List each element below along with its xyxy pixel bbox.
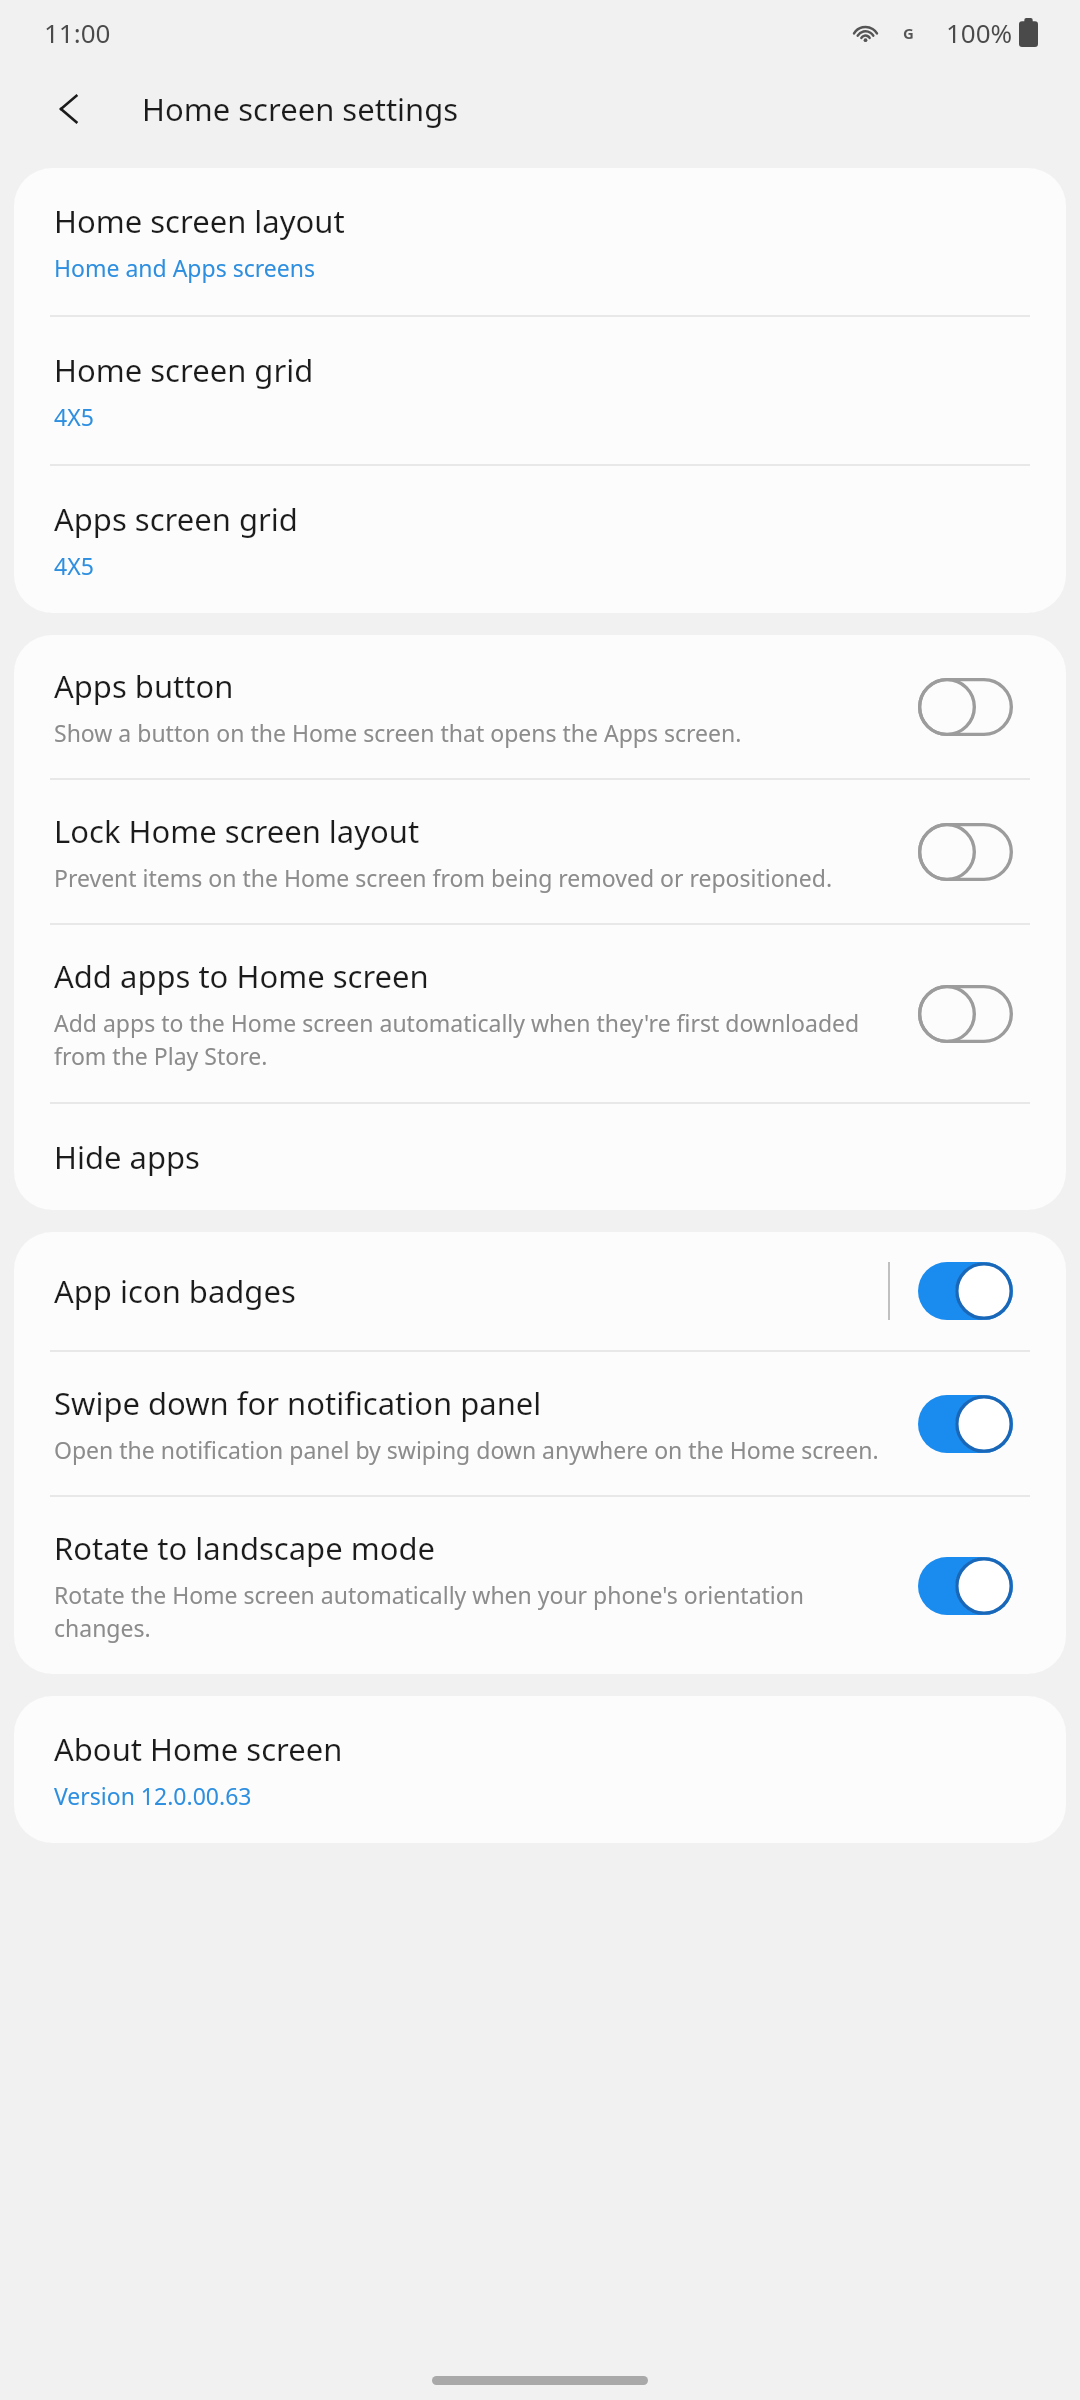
button[interactable]: Home screen layout [14,168,1066,315]
button[interactable]: App icon badges [918,1262,1013,1320]
button[interactable]: Rotate to landscape mode [14,1497,1066,1674]
button[interactable]: About Home screen [14,1696,1066,1843]
staticText: Hide apps [54,1136,200,1178]
button[interactable]: Swipe down for notification panel [918,1395,1013,1453]
staticText: Show a button on the Home screen that op… [54,717,742,748]
staticText: G [903,23,914,43]
button[interactable]: App icon badges [14,1232,1066,1350]
staticText: Apps screen grid [54,498,298,540]
button[interactable]: Swipe down for notification panel [14,1352,1066,1495]
staticText: Rotate the Home screen automatically whe… [54,1579,898,1644]
button[interactable]: Rotate to landscape mode [918,1557,1013,1615]
staticText: Home screen settings [142,88,459,130]
staticText: Version 12.0.00.63 [54,1780,252,1811]
staticText: 100% [946,15,1013,50]
staticText: Add apps to Home screen [54,955,429,997]
button[interactable]: Add apps to Home screen [918,985,1013,1043]
staticText: Apps button [54,665,234,707]
button[interactable]: Apps screen grid [14,466,1066,613]
staticText: Home and Apps screens [54,252,315,283]
staticText: Add apps to the Home screen automaticall… [54,1007,898,1072]
button[interactable]: Add apps to Home screen [14,925,1066,1102]
staticText: 4X5 [54,401,94,432]
staticText: Swipe down for notification panel [54,1382,542,1424]
button[interactable]: Hide apps [14,1104,1066,1210]
button[interactable]: Apps button [918,678,1013,736]
staticText: 11:00 [44,15,111,50]
staticText: Home screen grid [54,349,314,391]
staticText: Prevent items on the Home screen from be… [54,862,833,893]
staticText: App icon badges [54,1270,296,1312]
button[interactable]: Home screen grid [14,317,1066,464]
staticText: Rotate to landscape mode [54,1527,435,1569]
button[interactable]: Back [40,79,100,139]
staticText: Lock Home screen layout [54,810,420,852]
button[interactable]: Lock Home screen layout [14,780,1066,923]
staticText: Open the notification panel by swiping d… [54,1434,879,1465]
button[interactable]: Apps button [14,635,1066,778]
staticText: Home screen layout [54,200,345,242]
button[interactable]: Lock Home screen layout [918,823,1013,881]
staticText: 4X5 [54,550,94,581]
staticText: About Home screen [54,1728,343,1770]
